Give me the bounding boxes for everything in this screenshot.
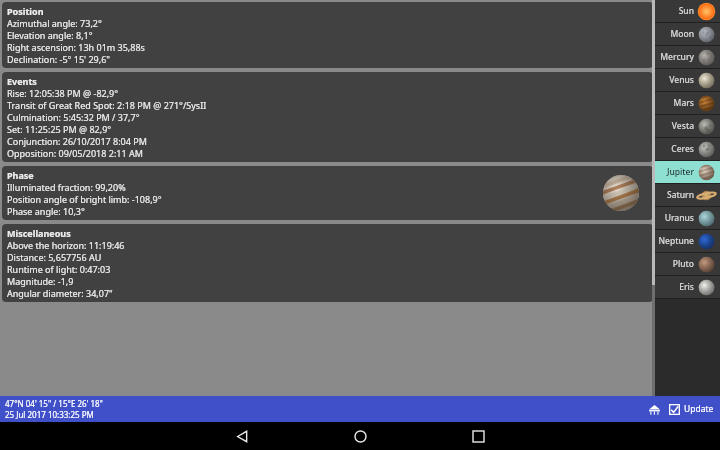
staticText: Uranus: [664, 212, 694, 224]
button[interactable]: Home: [342, 422, 378, 450]
button[interactable]: Saturn: [655, 184, 720, 206]
staticText: Venus: [669, 74, 694, 86]
staticText: Transit of Great Red Spot: 2:18 PM @ 271…: [7, 99, 207, 111]
staticText: Opposition: 09/05/2018 2:11 AM: [7, 147, 143, 159]
staticText: Declination: -5° 15' 29,6": [7, 53, 110, 65]
staticText: Right ascension: 13h 01m 35,88s: [7, 41, 145, 53]
staticText: Rise: 12:05:38 PM @ -82,9°: [7, 87, 119, 99]
staticText: 25 Jul 2017 10:33:25 PM: [5, 409, 94, 420]
staticText: Pluto: [672, 258, 694, 270]
staticText: Distance: 5,657756 AU: [7, 251, 102, 263]
staticText: Moon: [670, 28, 694, 40]
button[interactable]: Phase: [2, 166, 653, 220]
staticText: Runtime of light: 0:47:03: [7, 263, 111, 275]
staticText: Set: 11:25:25 PM @ 82,9°: [7, 123, 112, 135]
button[interactable]: Back: [224, 422, 260, 450]
staticText: Sun: [678, 5, 694, 17]
staticText: Angular diameter: 34,07": [7, 287, 113, 299]
staticText: Conjunction: 26/10/2017 8:04 PM: [7, 135, 147, 147]
button[interactable]: Neptune: [655, 230, 720, 252]
staticText: Position angle of bright limb: -108,9°: [7, 193, 162, 205]
staticText: Saturn: [666, 189, 694, 201]
staticText: Miscellaneous: [7, 227, 71, 239]
button[interactable]: Pluto: [655, 253, 720, 275]
staticText: Phase: [7, 169, 34, 181]
staticText: Magnitude: -1,9: [7, 275, 74, 287]
staticText: Ceres: [671, 143, 694, 155]
button[interactable]: Mars: [655, 92, 720, 114]
button[interactable]: Observatory: [645, 400, 663, 418]
staticText: Phase angle: 10,3°: [7, 205, 85, 217]
button[interactable]: Uranus: [655, 207, 720, 229]
staticText: Eris: [679, 281, 694, 293]
button[interactable]: Mercury: [655, 46, 720, 68]
button[interactable]: Update: [669, 403, 714, 415]
staticText: Neptune: [658, 235, 694, 247]
staticText: Update: [684, 403, 714, 415]
button[interactable]: Ceres: [655, 138, 720, 160]
button[interactable]: Jupiter: [655, 161, 720, 183]
staticText: Mercury: [660, 51, 694, 63]
staticText: Above the horizon: 11:19:46: [7, 239, 125, 251]
staticText: Position: [7, 5, 44, 17]
button[interactable]: Venus: [655, 69, 720, 91]
staticText: Vesta: [671, 120, 694, 132]
button[interactable]: Moon: [655, 23, 720, 45]
button[interactable]: Eris: [655, 276, 720, 298]
button[interactable]: Position: [2, 2, 653, 68]
staticText: Events: [7, 75, 37, 87]
staticText: Culmination: 5:45:32 PM / 37,7°: [7, 111, 140, 123]
staticText: Mars: [673, 97, 694, 109]
button[interactable]: Vesta: [655, 115, 720, 137]
staticText: Illuminated fraction: 99,20%: [7, 181, 126, 193]
staticText: 47°N 04' 15" / 15°E 26' 18": [5, 398, 103, 409]
staticText: Azimuthal angle: 73,2°: [7, 17, 102, 29]
button[interactable]: Miscellaneous: [2, 224, 653, 302]
staticText: Elevation angle: 8,1°: [7, 29, 93, 41]
button[interactable]: Recents: [460, 422, 496, 450]
button[interactable]: Events: [2, 72, 653, 162]
button[interactable]: Sun: [655, 0, 720, 22]
staticText: Jupiter: [666, 166, 694, 178]
